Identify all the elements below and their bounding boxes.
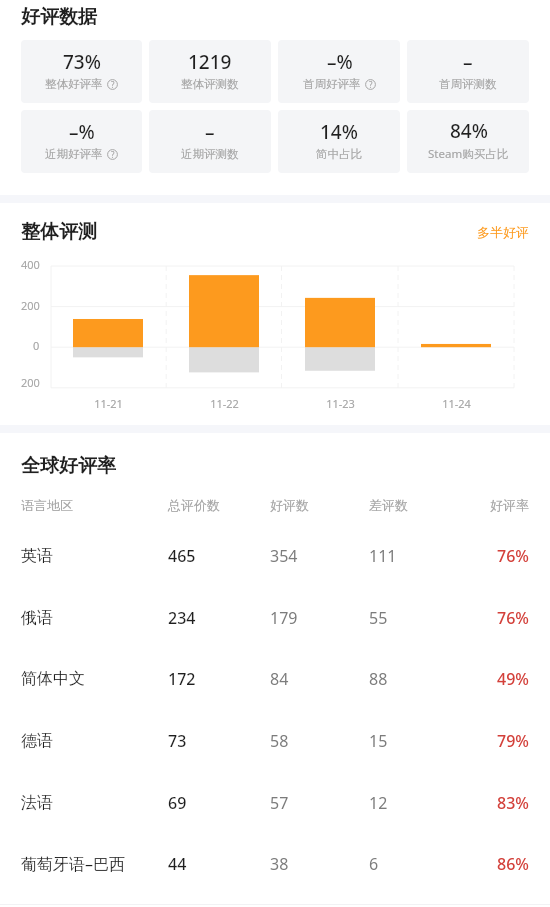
- staticText: 英语: [21, 546, 168, 566]
- staticText: –: [463, 49, 473, 75]
- staticText: ?: [111, 79, 115, 90]
- staticText: 好评率: [490, 497, 529, 513]
- staticText: 83%: [497, 792, 529, 814]
- staticText: 简中占比: [316, 147, 362, 161]
- staticText: 首周好评率: [303, 77, 361, 91]
- staticText: 近期好评率: [45, 147, 103, 161]
- button[interactable]: 葡萄牙语–巴西: [0, 833, 550, 895]
- staticText: Steam购买占比: [428, 146, 509, 162]
- staticText: 200: [21, 375, 40, 390]
- staticText: 234: [168, 607, 270, 629]
- other: Help: [107, 149, 118, 160]
- staticText: –%: [69, 119, 95, 145]
- staticText: 58: [270, 730, 369, 752]
- staticText: 德语: [21, 731, 168, 751]
- staticText: 200: [21, 298, 40, 313]
- button[interactable]: 俄语: [0, 587, 550, 649]
- staticText: 首周评测数: [439, 77, 497, 91]
- staticText: 简体中文: [21, 669, 168, 689]
- staticText: 69: [168, 792, 270, 814]
- staticText: 400: [21, 257, 40, 272]
- staticText: 84: [270, 668, 369, 690]
- button[interactable]: –: [407, 40, 529, 103]
- staticText: 法语: [21, 793, 168, 813]
- staticText: 整体好评率: [45, 77, 103, 91]
- staticText: 整体评测数: [181, 77, 239, 91]
- button[interactable]: 英语: [0, 525, 550, 587]
- staticText: 73%: [63, 49, 101, 75]
- staticText: 6: [369, 853, 471, 875]
- button[interactable]: 多半好评: [465, 220, 529, 244]
- staticText: 465: [168, 545, 270, 567]
- staticText: 76%: [497, 545, 529, 567]
- staticText: ?: [111, 149, 115, 160]
- staticText: 354: [270, 545, 369, 567]
- staticText: 俄语: [21, 608, 168, 628]
- button[interactable]: –%: [278, 40, 400, 103]
- other: Help: [365, 79, 376, 90]
- button[interactable]: –%: [21, 110, 142, 173]
- staticText: 179: [270, 607, 369, 629]
- button[interactable]: 1219: [149, 40, 271, 103]
- staticText: 1219: [188, 49, 232, 75]
- staticText: 11-24: [442, 396, 471, 411]
- staticText: 38: [270, 853, 369, 875]
- staticText: 11-23: [326, 396, 355, 411]
- staticText: 76%: [497, 607, 529, 629]
- staticText: 84%: [450, 118, 488, 144]
- staticText: 0: [33, 338, 40, 353]
- staticText: 11-22: [210, 396, 239, 411]
- staticText: 好评数: [270, 497, 369, 513]
- staticText: 49%: [497, 668, 529, 690]
- staticText: 整体评测: [21, 220, 97, 244]
- button[interactable]: –: [149, 110, 271, 173]
- staticText: 近期评测数: [181, 147, 239, 161]
- staticText: 55: [369, 607, 471, 629]
- button[interactable]: 简体中文: [0, 648, 550, 710]
- staticText: 73: [168, 730, 270, 752]
- staticText: 88: [369, 668, 471, 690]
- staticText: 111: [369, 545, 471, 567]
- staticText: 12: [369, 792, 471, 814]
- staticText: 差评数: [369, 497, 471, 513]
- staticText: 11-21: [94, 396, 123, 411]
- staticText: 14%: [320, 119, 358, 145]
- staticText: 79%: [497, 730, 529, 752]
- staticText: –%: [327, 49, 353, 75]
- staticText: 总评价数: [168, 497, 270, 513]
- staticText: 57: [270, 792, 369, 814]
- staticText: 多半好评: [477, 224, 529, 240]
- staticText: 全球好评率: [21, 454, 116, 478]
- button[interactable]: 73%: [21, 40, 142, 103]
- staticText: 44: [168, 853, 270, 875]
- button[interactable]: 德语: [0, 710, 550, 772]
- staticText: 葡萄牙语–巴西: [21, 853, 168, 875]
- staticText: ?: [369, 79, 373, 90]
- staticText: 86%: [497, 853, 529, 875]
- other: Help: [107, 79, 118, 90]
- staticText: 172: [168, 668, 270, 690]
- button[interactable]: 法语: [0, 772, 550, 834]
- button[interactable]: 14%: [278, 110, 400, 173]
- staticText: –: [205, 119, 215, 145]
- button[interactable]: 84%: [407, 110, 529, 173]
- staticText: 15: [369, 730, 471, 752]
- staticText: 好评数据: [21, 5, 97, 29]
- staticText: 语言地区: [21, 497, 168, 513]
